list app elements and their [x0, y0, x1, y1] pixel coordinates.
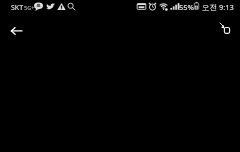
staticText: 5G+ [24, 4, 35, 11]
staticText: 55% [179, 2, 194, 12]
button[interactable]: Picture in picture [208, 18, 232, 42]
staticText: 오전 9:13 [202, 2, 234, 12]
button[interactable]: Back [4, 18, 29, 43]
button[interactable]: Video surface [0, 0, 240, 152]
staticText: SKT [11, 3, 24, 13]
